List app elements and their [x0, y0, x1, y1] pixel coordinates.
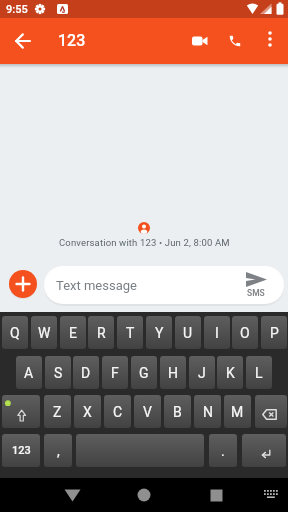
staticText: 123 [58, 31, 86, 50]
staticText: SMS [247, 288, 265, 298]
staticText: Text message [56, 278, 137, 293]
staticText: C [113, 404, 123, 420]
button[interactable]: B [164, 395, 191, 428]
button[interactable]: Text message [44, 266, 284, 304]
button[interactable] [7, 25, 39, 57]
staticText: O [240, 325, 250, 341]
staticText: X [83, 404, 92, 420]
staticText: 123 [12, 444, 31, 457]
button[interactable]: A [16, 356, 42, 389]
staticText: L [255, 365, 263, 381]
staticText: G [139, 365, 149, 381]
staticText: N [203, 404, 213, 420]
button[interactable]: I [204, 316, 230, 349]
staticText: F [111, 365, 119, 381]
button[interactable]: 123 [2, 434, 40, 467]
staticText: . [221, 443, 225, 459]
button[interactable]: J [189, 356, 215, 389]
button[interactable] [2, 395, 40, 428]
button[interactable]: O [232, 316, 258, 349]
button[interactable]: D [73, 356, 99, 389]
staticText: , [57, 443, 60, 459]
staticText: Q [10, 325, 20, 341]
button[interactable]: C [104, 395, 131, 428]
button[interactable] [242, 434, 286, 467]
button[interactable] [255, 395, 287, 428]
staticText: P [270, 325, 279, 341]
button[interactable]: L [246, 356, 272, 389]
staticText: J [198, 365, 206, 381]
staticText: Y [155, 325, 164, 341]
button[interactable] [200, 479, 232, 511]
button[interactable]: N [194, 395, 221, 428]
button[interactable] [76, 434, 204, 467]
staticText: B [173, 404, 182, 420]
staticText: D [81, 365, 91, 381]
button[interactable] [56, 479, 88, 511]
button[interactable]: U [175, 316, 201, 349]
staticText: V [143, 404, 152, 420]
button[interactable]: G [131, 356, 157, 389]
button[interactable] [219, 25, 251, 57]
button[interactable]: H [160, 356, 186, 389]
button[interactable] [256, 25, 284, 53]
staticText: A [24, 365, 34, 381]
button[interactable]: Y [146, 316, 172, 349]
button[interactable]: SMS [244, 270, 270, 300]
button[interactable] [184, 25, 216, 57]
staticText: K [226, 365, 235, 381]
staticText: U [183, 325, 193, 341]
staticText: S [54, 365, 63, 381]
button[interactable]: S [45, 356, 71, 389]
staticText: E [69, 325, 77, 341]
staticText: I [215, 325, 219, 341]
button[interactable]: R [88, 316, 114, 349]
button[interactable]: M [224, 395, 251, 428]
button[interactable]: P [261, 316, 287, 349]
staticText: M [231, 404, 244, 420]
button[interactable]: X [74, 395, 101, 428]
staticText: W [38, 325, 51, 341]
staticText: T [126, 325, 135, 341]
button[interactable]: T [117, 316, 143, 349]
staticText: 9:55 [6, 3, 28, 16]
button[interactable]: F [102, 356, 128, 389]
staticText: R [97, 325, 106, 341]
button[interactable]: W [31, 316, 57, 349]
button[interactable] [258, 481, 284, 507]
button[interactable] [128, 479, 160, 511]
button[interactable]: Q [2, 316, 28, 349]
staticText: Conversation with 123 • Jun 2, 8:00 AM [59, 237, 230, 248]
button[interactable]: . [209, 434, 237, 467]
button[interactable] [9, 270, 37, 298]
button[interactable]: E [60, 316, 86, 349]
button[interactable]: , [44, 434, 72, 467]
staticText: Z [53, 404, 62, 420]
button[interactable]: V [134, 395, 161, 428]
staticText: H [168, 365, 178, 381]
button[interactable]: K [217, 356, 243, 389]
button[interactable]: Z [44, 395, 71, 428]
